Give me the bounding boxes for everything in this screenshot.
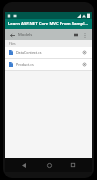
- button[interactable]: File options: [81, 61, 88, 68]
- button[interactable]: Grid view: [72, 31, 80, 39]
- staticText: Product.cs: [16, 62, 34, 67]
- button[interactable]: Recent apps: [68, 160, 78, 170]
- staticText: Files: [9, 42, 16, 46]
- staticText: Models: [18, 32, 33, 38]
- staticText: DataContext.cs: [16, 50, 42, 55]
- button[interactable]: File options: [81, 49, 88, 56]
- button[interactable]: Product.cs: [5, 59, 92, 70]
- button[interactable]: More options: [81, 31, 89, 39]
- button[interactable]: DataContext.cs: [5, 47, 92, 58]
- staticText: Learn ASP.NET Core MVC From Sample...: [8, 21, 89, 27]
- button[interactable]: Back: [19, 160, 29, 170]
- button[interactable]: Home: [44, 160, 54, 170]
- button[interactable]: Back: [8, 31, 16, 39]
